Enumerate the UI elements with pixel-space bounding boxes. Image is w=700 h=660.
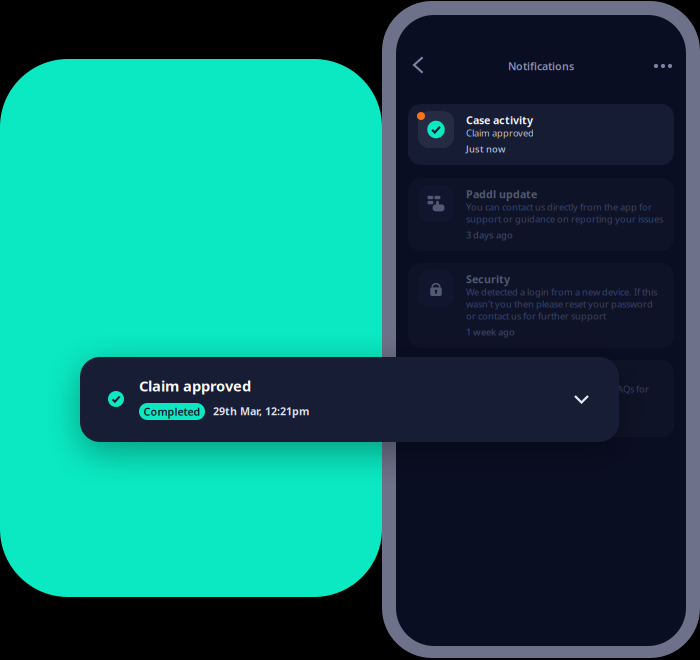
button[interactable]: Security <box>408 263 674 348</box>
staticText: Notifications <box>508 59 574 73</box>
staticText: Claim approved <box>139 376 251 395</box>
staticText: Completed <box>143 404 200 419</box>
staticText: You can contact us directly from the app… <box>466 201 652 213</box>
staticText: Just now <box>466 143 506 155</box>
button[interactable]: Claim approved <box>80 357 619 442</box>
button[interactable]: Help centre <box>408 360 674 437</box>
staticText: Security <box>466 272 510 286</box>
button[interactable]: Back <box>404 50 432 80</box>
button[interactable]: More options <box>648 51 678 81</box>
button[interactable]: Paddl update <box>408 178 674 251</box>
staticText: Case activity <box>466 113 533 127</box>
staticText: 3 days ago <box>466 229 513 241</box>
staticText: Claim approved <box>466 127 534 139</box>
staticText: or contact us for further support <box>466 310 606 322</box>
button[interactable]: Case activity <box>408 104 674 165</box>
staticText: answers to common questions <box>466 395 598 407</box>
staticText: wasn't you then please reset your passwo… <box>466 298 653 310</box>
staticText: Paddl update <box>466 187 537 201</box>
staticText: 29th Mar, 12:21pm <box>213 404 309 418</box>
staticText: support or guidance on reporting your is… <box>466 213 663 225</box>
staticText: We detected a login from a new device. I… <box>466 286 657 298</box>
staticText: 1 week ago <box>466 326 515 338</box>
staticText: Take a look at our help centre and FAQs … <box>466 383 649 395</box>
